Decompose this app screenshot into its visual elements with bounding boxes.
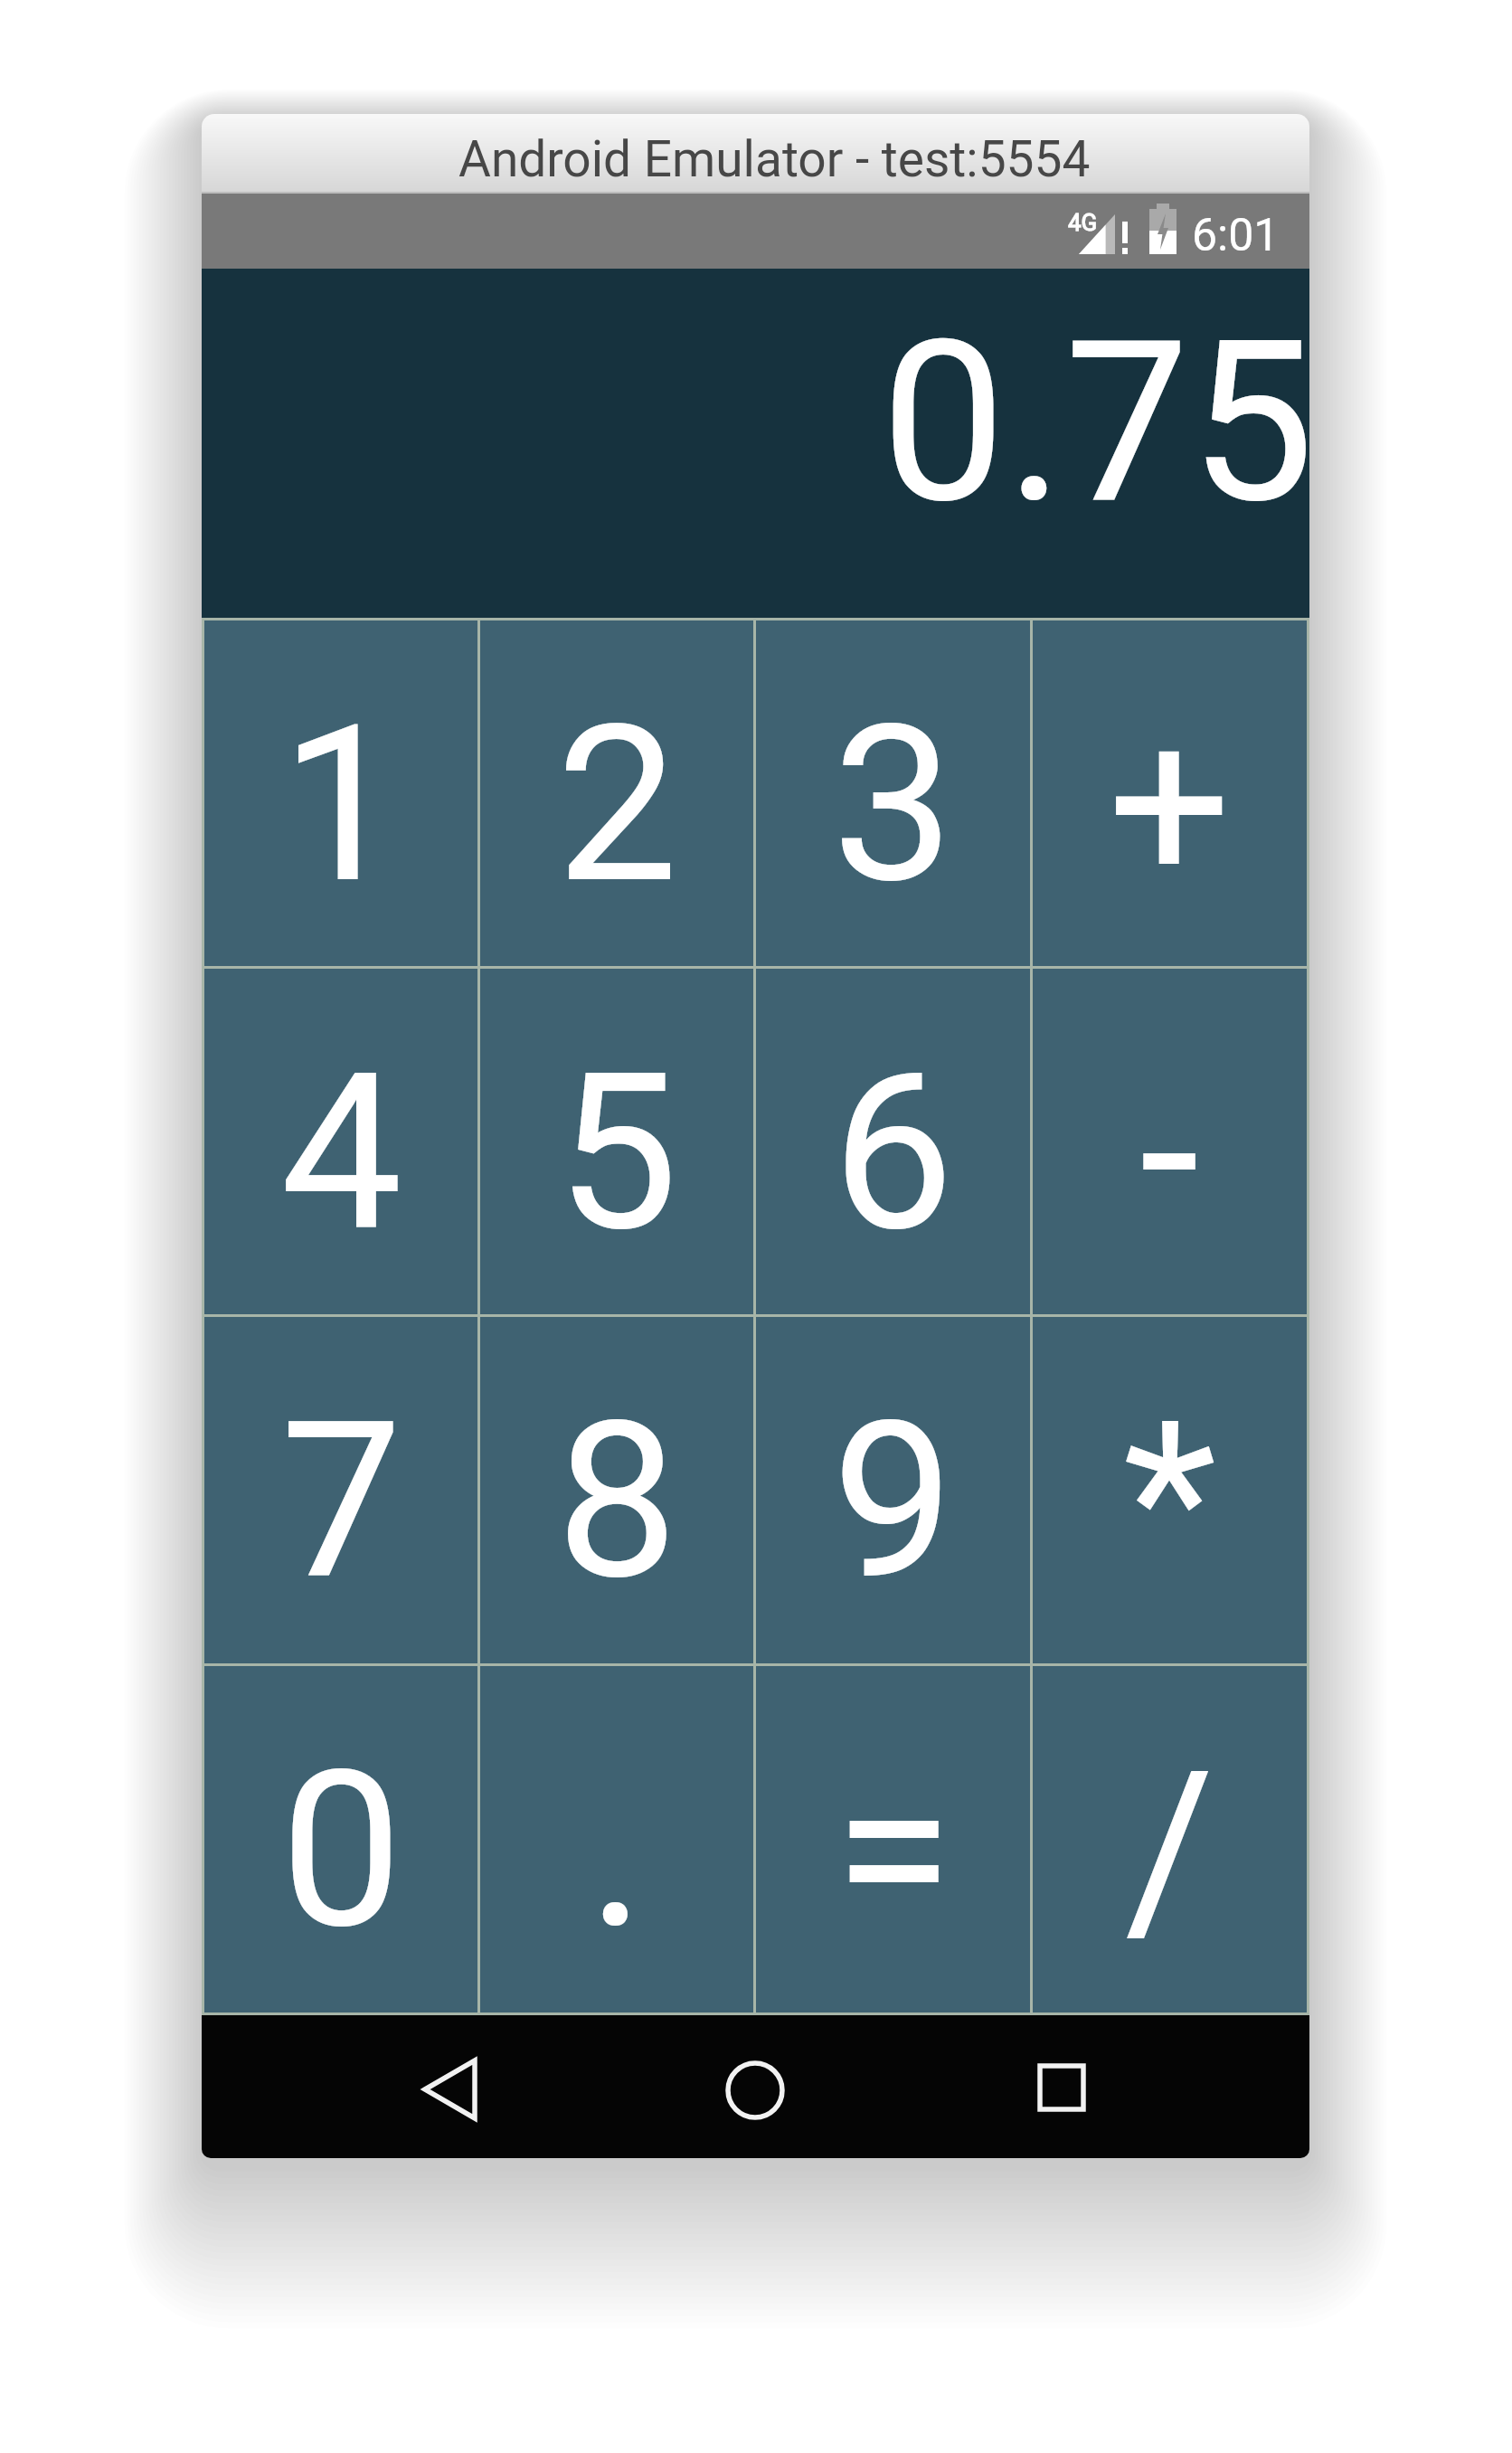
button[interactable]: - bbox=[1033, 969, 1307, 1314]
button[interactable]: 6 bbox=[756, 969, 1030, 1314]
staticText: 6:01 bbox=[1192, 209, 1280, 262]
staticText: . bbox=[588, 1723, 646, 1977]
button[interactable]: = bbox=[756, 1666, 1030, 2013]
button[interactable]: 4 bbox=[204, 969, 477, 1314]
staticText: 0.75 bbox=[881, 293, 1309, 554]
button[interactable]: 7 bbox=[204, 1317, 477, 1663]
staticText: 1 bbox=[280, 677, 402, 932]
staticText: 8 bbox=[556, 1374, 678, 1628]
staticText: 3 bbox=[832, 677, 954, 932]
button[interactable]: 0 bbox=[204, 1666, 477, 2013]
staticText: / bbox=[1125, 1723, 1215, 1977]
button[interactable]: 5 bbox=[480, 969, 753, 1314]
button[interactable] bbox=[419, 2054, 482, 2119]
button[interactable] bbox=[1037, 2063, 1088, 2114]
button[interactable]: 9 bbox=[756, 1317, 1030, 1663]
button[interactable]: + bbox=[1033, 620, 1307, 966]
button[interactable]: 2 bbox=[480, 620, 753, 966]
staticText: Android Emulator - test:5554 bbox=[458, 130, 1091, 188]
staticText: = bbox=[834, 1723, 953, 1977]
staticText: + bbox=[1108, 677, 1232, 932]
button[interactable]: * bbox=[1033, 1317, 1307, 1663]
staticText: 5 bbox=[556, 1026, 678, 1280]
button[interactable]: / bbox=[1033, 1666, 1307, 2013]
button[interactable]: 8 bbox=[480, 1317, 753, 1663]
staticText: 0 bbox=[280, 1723, 402, 1977]
button[interactable]: . bbox=[480, 1666, 753, 2013]
button[interactable]: 1 bbox=[204, 620, 477, 966]
staticText: 2 bbox=[556, 677, 678, 932]
staticText: - bbox=[1139, 1026, 1200, 1280]
staticText: 4G bbox=[1068, 209, 1098, 236]
staticText: * bbox=[1123, 1374, 1217, 1628]
button[interactable]: 3 bbox=[756, 620, 1030, 966]
staticText: 7 bbox=[280, 1374, 402, 1628]
staticText: 9 bbox=[832, 1374, 954, 1628]
staticText: 4 bbox=[280, 1026, 402, 1280]
staticText: 6 bbox=[832, 1026, 954, 1280]
button[interactable] bbox=[724, 2059, 786, 2120]
